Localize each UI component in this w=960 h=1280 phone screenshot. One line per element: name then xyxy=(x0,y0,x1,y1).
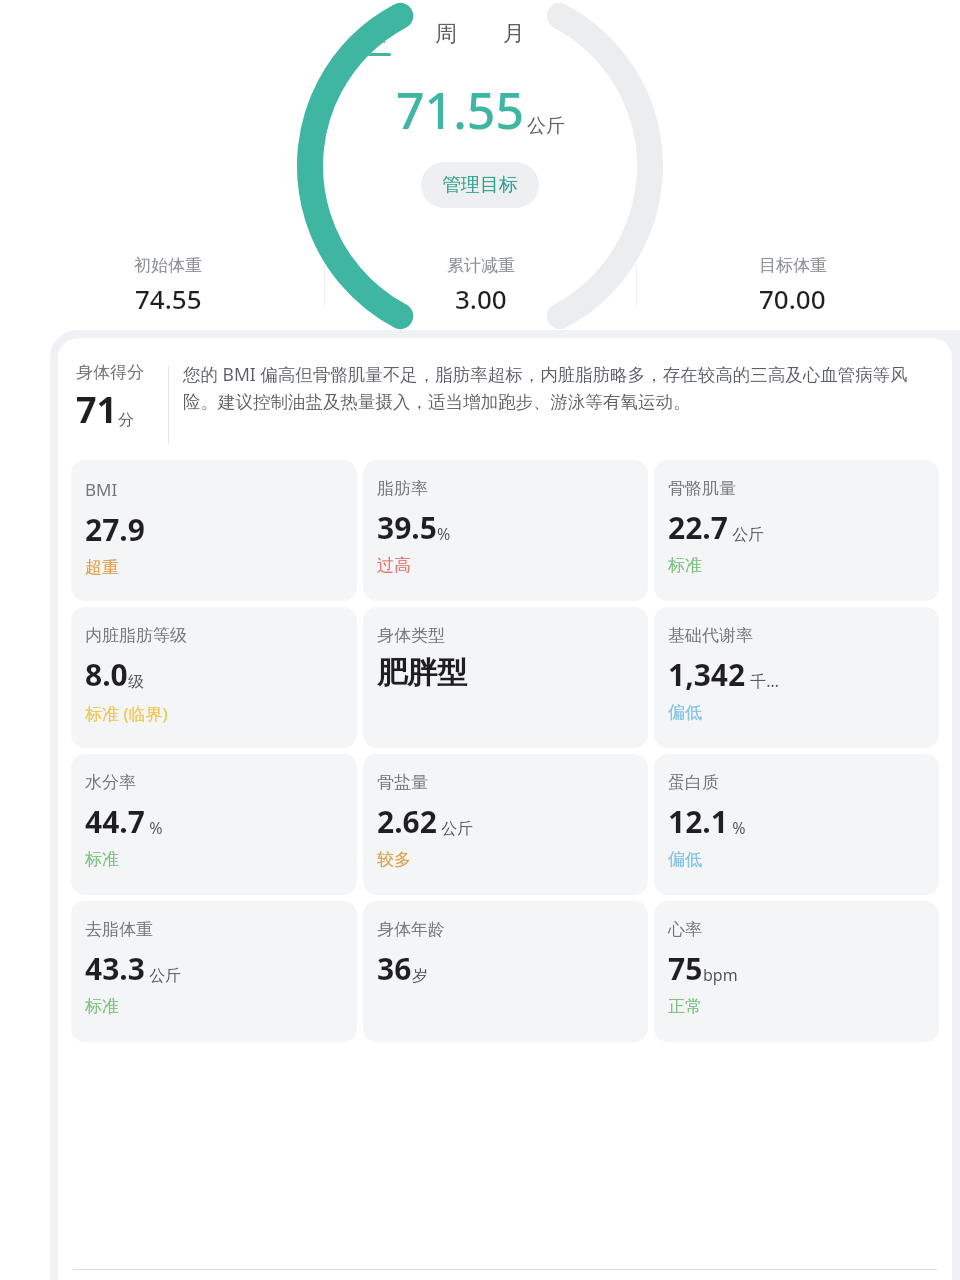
staticText: 74.55 xyxy=(135,281,202,316)
staticText: 正常 xyxy=(668,996,702,1017)
staticText: 水分率 xyxy=(85,772,136,793)
staticText: 8.0 xyxy=(85,654,128,695)
button[interactable]: 基础代谢率 xyxy=(654,607,939,748)
staticText: 初始体重 xyxy=(134,255,202,276)
button[interactable]: 骨盐量 xyxy=(363,754,648,895)
staticText: 12.1 xyxy=(668,801,728,842)
button[interactable]: 年 xyxy=(548,18,616,58)
staticText: 71 xyxy=(76,385,118,434)
staticText: 日 xyxy=(367,20,389,48)
staticText: 标准 xyxy=(85,849,119,870)
staticText: 累计减重 xyxy=(447,255,515,276)
staticText: % xyxy=(728,817,746,839)
staticText: 管理目标 xyxy=(442,173,518,197)
button[interactable]: 身体年龄 xyxy=(363,901,648,1042)
staticText: 公斤 xyxy=(437,817,474,839)
staticText: 标准 (临界) xyxy=(85,702,168,725)
staticText: 肥胖型 xyxy=(377,654,467,692)
button[interactable]: 去脂体重 xyxy=(71,901,357,1042)
staticText: 蛋白质 xyxy=(668,772,719,793)
staticText: 年 xyxy=(571,20,593,48)
staticText: 较多 xyxy=(377,849,411,870)
staticText: 27.9 xyxy=(85,509,145,550)
button[interactable]: 周 xyxy=(412,18,480,58)
button[interactable]: 累计减重 xyxy=(325,251,636,320)
staticText: 偏低 xyxy=(668,849,702,870)
button[interactable]: 骨骼肌量 xyxy=(654,460,939,601)
staticText: 过高 xyxy=(377,555,411,576)
staticText: 您的 BMI 偏高但骨骼肌量不足，脂肪率超标，内脏脂肪略多，存在较高的三高及心血… xyxy=(183,362,938,413)
staticText: 身体得分 xyxy=(76,362,144,383)
staticText: 公斤 xyxy=(145,964,182,986)
staticText: 2.62 xyxy=(377,801,437,842)
staticText: 千… xyxy=(746,670,779,692)
staticText: 75 xyxy=(668,948,703,989)
button[interactable]: 脂肪率 xyxy=(363,460,648,601)
staticText: 71.55 xyxy=(396,76,524,144)
staticText: 内脏脂肪等级 xyxy=(85,625,187,646)
staticText: 偏低 xyxy=(668,702,702,723)
button[interactable]: 心率 xyxy=(654,901,939,1042)
staticText: 36 xyxy=(377,948,412,989)
staticText: 级 xyxy=(128,672,144,692)
staticText: 月 xyxy=(503,20,525,48)
staticText: 43.3 xyxy=(85,948,145,989)
staticText: 周 xyxy=(435,20,457,48)
staticText: 身体类型 xyxy=(377,625,445,646)
button[interactable]: BMI xyxy=(71,460,357,601)
staticText: 骨盐量 xyxy=(377,772,428,793)
button[interactable]: 日 xyxy=(344,18,412,58)
button[interactable]: 管理目标 xyxy=(421,162,539,208)
staticText: 骨骼肌量 xyxy=(668,478,736,499)
staticText: bpm xyxy=(703,964,738,986)
button[interactable]: 初始体重 xyxy=(12,251,324,320)
staticText: % xyxy=(437,523,451,545)
staticText: BMI xyxy=(85,478,118,501)
staticText: 1,342 xyxy=(668,654,746,695)
staticText: 39.5 xyxy=(377,507,437,548)
staticText: 目标体重 xyxy=(759,255,827,276)
staticText: 去脂体重 xyxy=(85,919,153,940)
staticText: 22.7 xyxy=(668,507,728,548)
button[interactable]: 目标体重 xyxy=(637,251,948,320)
staticText: 标准 xyxy=(85,996,119,1017)
staticText: 岁 xyxy=(412,966,428,986)
button[interactable]: 水分率 xyxy=(71,754,357,895)
staticText: 3.00 xyxy=(455,281,507,316)
staticText: 心率 xyxy=(668,919,702,940)
staticText: 身体年龄 xyxy=(377,919,445,940)
staticText: % xyxy=(145,817,163,839)
button[interactable]: 身体得分 xyxy=(76,362,168,434)
button[interactable]: 蛋白质 xyxy=(654,754,939,895)
staticText: 公斤 xyxy=(527,114,565,138)
staticText: 超重 xyxy=(85,557,119,578)
staticText: 分 xyxy=(118,410,134,430)
staticText: 公斤 xyxy=(728,523,765,545)
staticText: 基础代谢率 xyxy=(668,625,753,646)
staticText: 脂肪率 xyxy=(377,478,428,499)
staticText: 标准 xyxy=(668,555,702,576)
button[interactable]: 内脏脂肪等级 xyxy=(71,607,357,748)
staticText: 44.7 xyxy=(85,801,145,842)
staticText: 70.00 xyxy=(759,281,826,316)
button[interactable]: 月 xyxy=(480,18,548,58)
button[interactable]: 身体类型 xyxy=(363,607,648,748)
